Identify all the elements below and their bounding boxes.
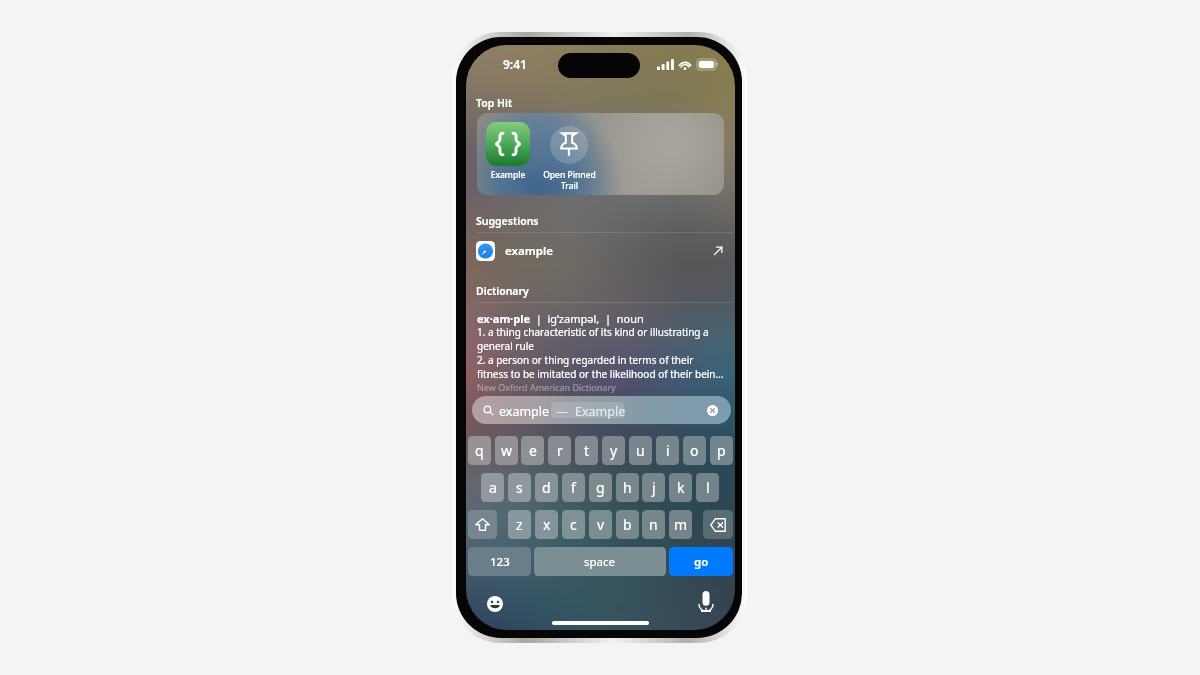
staticText: d: [542, 478, 551, 497]
staticText: Dictionary: [476, 284, 529, 298]
staticText: space: [584, 554, 616, 570]
button[interactable]: t: [575, 436, 598, 465]
button[interactable]: r: [548, 436, 571, 465]
button[interactable]: i: [656, 436, 679, 465]
staticText: o: [690, 441, 699, 460]
button[interactable]: Backspace: [703, 510, 733, 539]
staticText: z: [516, 515, 523, 534]
button[interactable]: k: [669, 473, 692, 502]
button[interactable]: g: [589, 473, 612, 502]
button[interactable]: s: [508, 473, 531, 502]
button[interactable]: go: [669, 547, 733, 576]
button[interactable]: z: [508, 510, 531, 539]
staticText: | igˈzampəl, | noun: [530, 311, 644, 326]
staticText: Open Pinned Trail: [543, 169, 596, 191]
staticText: j: [652, 478, 656, 497]
button[interactable]: Open Pinned Trail: [550, 126, 588, 164]
staticText: Example: [482, 169, 534, 181]
staticText: example: [505, 243, 553, 259]
button[interactable]: q: [468, 436, 491, 465]
button[interactable]: Emoji keyboard: [487, 596, 503, 612]
button[interactable]: n: [642, 510, 665, 539]
staticText: p: [717, 441, 726, 460]
staticText: x: [543, 515, 551, 534]
staticText: r: [557, 441, 563, 460]
button[interactable]: x: [535, 510, 558, 539]
staticText: t: [584, 441, 590, 460]
button[interactable]: u: [629, 436, 652, 465]
staticText: — Example: [556, 403, 626, 420]
button[interactable]: 123: [468, 547, 531, 576]
staticText: Top Hit: [476, 96, 513, 110]
staticText: 1. a thing characteristic of its kind or…: [477, 325, 724, 381]
button[interactable]: j: [642, 473, 665, 502]
button[interactable]: Dictate: [699, 591, 713, 612]
staticText: s: [516, 478, 523, 497]
button[interactable]: l: [696, 473, 719, 502]
staticText: b: [623, 515, 632, 534]
staticText: f: [571, 478, 576, 497]
button[interactable]: [486, 122, 530, 166]
staticText: q: [475, 441, 484, 460]
button[interactable]: example: [472, 396, 731, 424]
staticText: e: [529, 441, 537, 460]
button[interactable]: example: [476, 239, 724, 263]
staticText: v: [597, 515, 605, 534]
staticText: c: [570, 515, 577, 534]
button[interactable]: c: [562, 510, 585, 539]
button[interactable]: d: [535, 473, 558, 502]
button[interactable]: b: [616, 510, 639, 539]
staticText: w: [501, 441, 513, 460]
button[interactable]: Clear: [707, 405, 718, 416]
staticText: Suggestions: [476, 214, 539, 228]
staticText: 123: [490, 554, 510, 570]
staticText: k: [677, 478, 685, 497]
staticText: ex·am·ple: [477, 311, 530, 326]
staticText: l: [706, 478, 710, 497]
button[interactable]: e: [521, 436, 544, 465]
button[interactable]: m: [669, 510, 692, 539]
button[interactable]: v: [589, 510, 612, 539]
staticText: h: [623, 478, 632, 497]
staticText: go: [694, 554, 709, 570]
staticText: a: [489, 478, 497, 497]
staticText: m: [674, 515, 688, 534]
staticText: y: [610, 441, 618, 460]
button[interactable]: p: [710, 436, 733, 465]
button[interactable]: f: [562, 473, 585, 502]
button[interactable]: [477, 113, 724, 195]
button[interactable]: Shift: [468, 510, 497, 539]
staticText: New Oxford American Dictionary: [477, 381, 616, 393]
staticText: example: [499, 403, 550, 420]
button[interactable]: space: [534, 547, 666, 576]
button[interactable]: o: [683, 436, 706, 465]
button[interactable]: y: [602, 436, 625, 465]
staticText: 9:41: [503, 56, 527, 72]
button[interactable]: w: [495, 436, 518, 465]
button[interactable]: h: [616, 473, 639, 502]
staticText: i: [666, 441, 670, 460]
button[interactable]: a: [481, 473, 504, 502]
staticText: n: [649, 515, 658, 534]
staticText: u: [636, 441, 645, 460]
staticText: g: [596, 478, 605, 497]
